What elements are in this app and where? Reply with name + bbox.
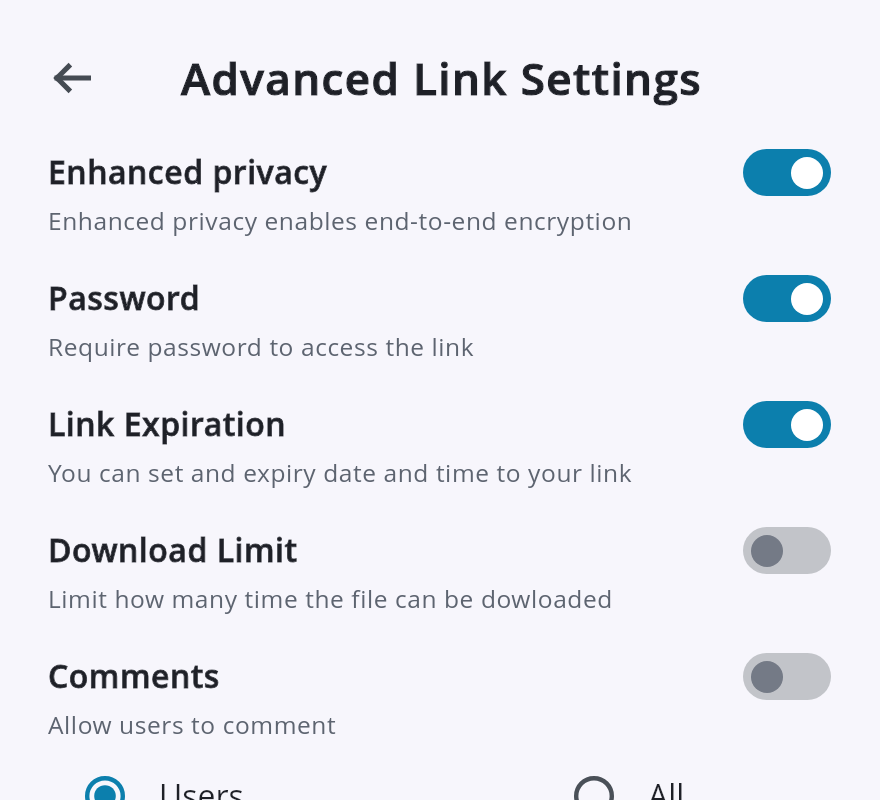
staticText: Enhanced privacy enables end-to-end encr…	[48, 204, 633, 237]
button[interactable]: Link Expiration	[0, 402, 880, 528]
button[interactable]: Switch off	[743, 653, 831, 700]
button[interactable]: Switch off	[743, 527, 831, 574]
staticText: Allow users to comment	[48, 708, 337, 741]
staticText: All	[648, 774, 685, 800]
staticText: Download Limit	[48, 528, 298, 572]
button[interactable]: Users	[85, 774, 244, 800]
staticText: Comments	[48, 654, 220, 698]
button[interactable]: Switch on	[743, 275, 831, 322]
button[interactable]: Enhanced privacy	[0, 150, 880, 276]
staticText: Password	[48, 276, 201, 320]
button[interactable]: Switch on	[743, 401, 831, 448]
staticText: Users	[159, 774, 244, 800]
staticText: Advanced Link Settings	[181, 48, 703, 108]
button[interactable]: Password	[0, 276, 880, 402]
button[interactable]: Download Limit	[0, 528, 880, 654]
button[interactable]: Comments	[0, 654, 880, 780]
staticText: Link Expiration	[48, 402, 287, 446]
staticText: Require password to access the link	[48, 330, 475, 363]
staticText: You can set and expiry date and time to …	[48, 456, 633, 489]
staticText: Enhanced privacy	[48, 150, 328, 194]
button[interactable]: All	[574, 774, 685, 800]
button[interactable]: Back	[40, 44, 110, 114]
button[interactable]: Switch on	[743, 149, 831, 196]
staticText: Limit how many time the file can be dowl…	[48, 582, 613, 615]
